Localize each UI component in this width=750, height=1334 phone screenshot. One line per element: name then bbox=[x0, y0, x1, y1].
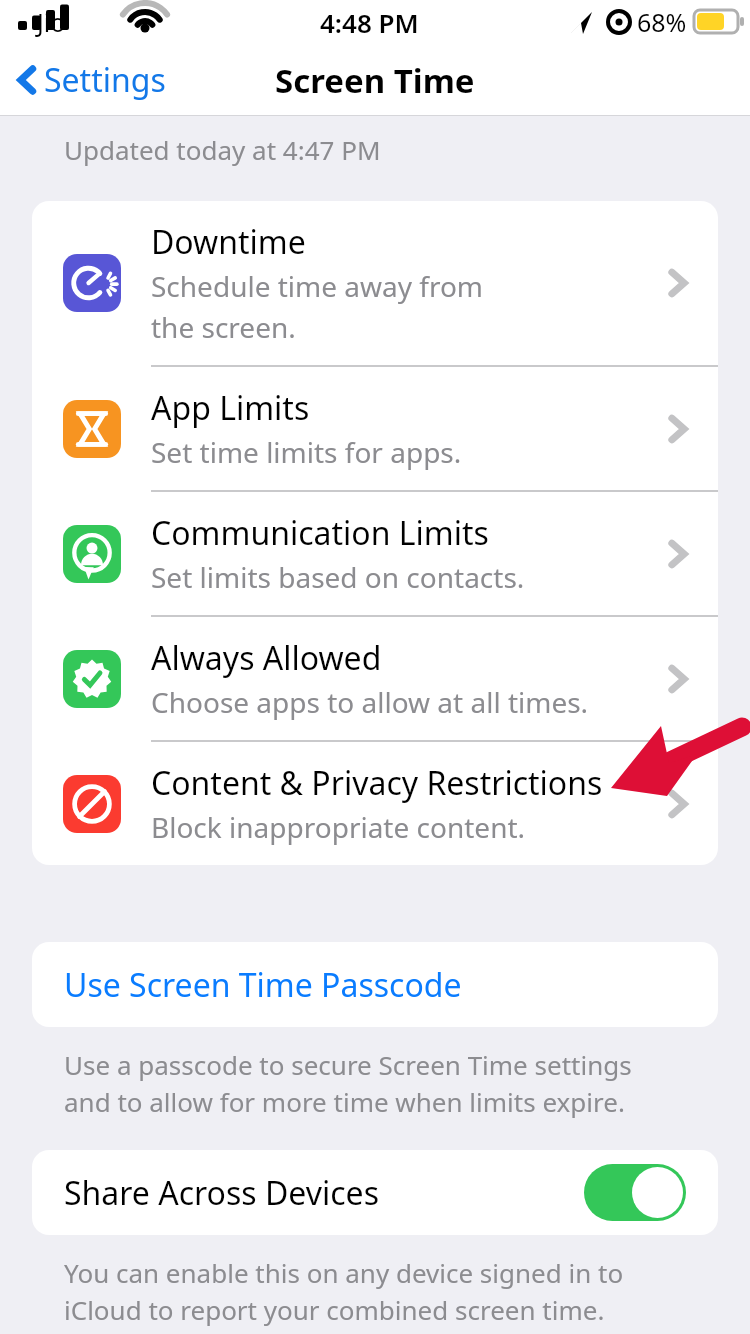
button[interactable]: Downtime bbox=[32, 201, 718, 365]
staticText: Choose apps to allow at all times. bbox=[151, 683, 589, 721]
staticText: Updated today at 4:47 PM bbox=[64, 132, 381, 167]
staticText: 4:48 PM bbox=[320, 5, 419, 40]
button[interactable]: Always Allowed bbox=[32, 617, 718, 740]
staticText: Block inappropriate content. bbox=[151, 808, 526, 846]
staticText: Content & Privacy Restrictions bbox=[151, 761, 603, 805]
staticText: Jio bbox=[37, 5, 66, 39]
staticText: App Limits bbox=[151, 386, 310, 430]
staticText: Use Screen Time Passcode bbox=[64, 963, 462, 1007]
staticText: Screen Time bbox=[275, 58, 475, 103]
button[interactable]: Share Across Devices bbox=[32, 1150, 718, 1235]
staticText: Downtime bbox=[151, 220, 306, 264]
staticText: Use a passcode to secure Screen Time set… bbox=[64, 1047, 632, 1120]
staticText: Set time limits for apps. bbox=[151, 433, 462, 471]
button[interactable]: Settings bbox=[0, 52, 178, 108]
staticText: Communication Limits bbox=[151, 511, 489, 555]
staticText: 68% bbox=[637, 5, 687, 39]
staticText: Schedule time away from the screen. bbox=[151, 267, 484, 346]
other: Share Across Devices toggle, on bbox=[584, 1164, 686, 1221]
button[interactable]: App Limits bbox=[32, 367, 718, 490]
button[interactable]: Use Screen Time Passcode bbox=[32, 942, 718, 1027]
staticText: Share Across Devices bbox=[64, 1171, 584, 1215]
button[interactable]: Communication Limits bbox=[32, 492, 718, 615]
staticText: Settings bbox=[44, 58, 166, 102]
button[interactable]: Content & Privacy Restrictions bbox=[32, 742, 718, 865]
staticText: Set limits based on contacts. bbox=[151, 558, 525, 596]
staticText: Always Allowed bbox=[151, 636, 382, 680]
staticText: You can enable this on any device signed… bbox=[64, 1255, 624, 1328]
